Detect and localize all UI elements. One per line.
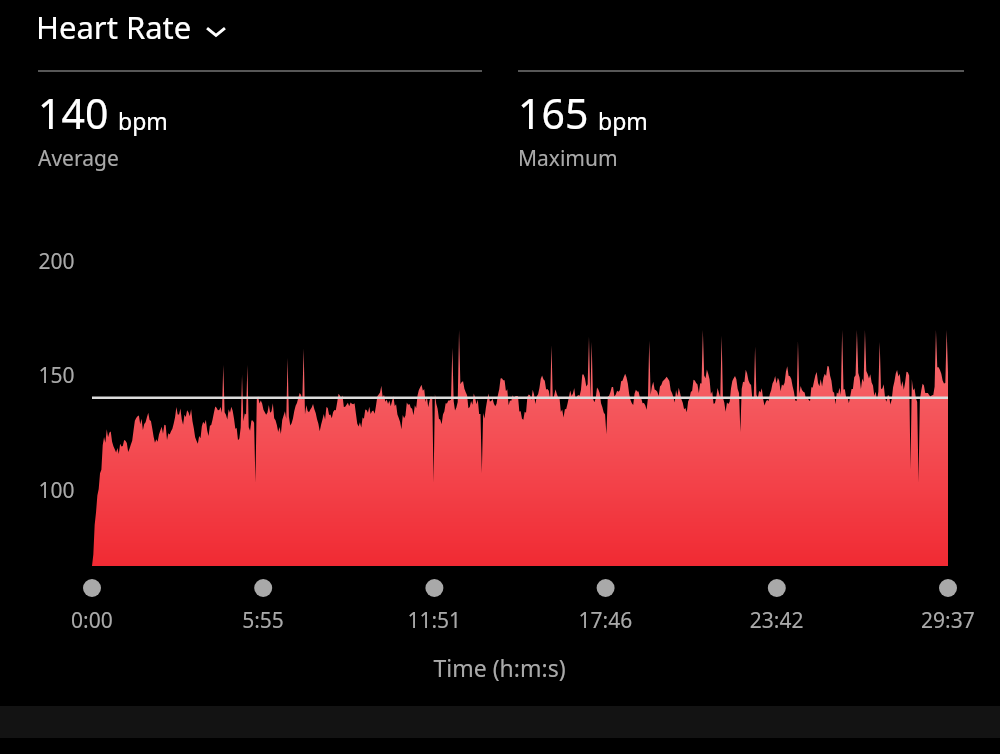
staticText: Maximum xyxy=(518,144,618,173)
staticText: Heart Rate xyxy=(36,6,192,48)
button[interactable]: 165 xyxy=(518,70,964,173)
staticText: bpm xyxy=(118,105,168,136)
staticText: 140 xyxy=(38,85,109,141)
staticText: Average xyxy=(38,144,119,173)
button[interactable]: Heart Rate xyxy=(36,6,230,48)
other: Expand xyxy=(202,17,230,45)
staticText: 165 xyxy=(518,85,589,141)
button[interactable]: 140 xyxy=(38,70,482,173)
staticText: bpm xyxy=(598,105,648,136)
